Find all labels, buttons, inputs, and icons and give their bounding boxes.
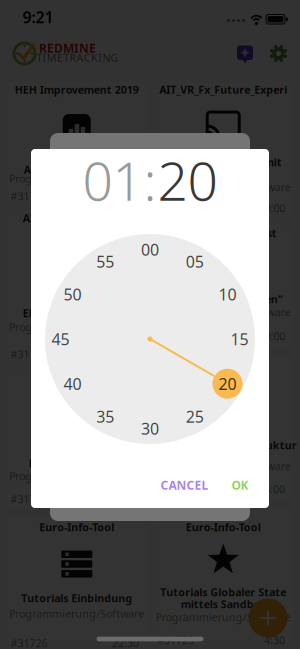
staticText: Programmierung/Software: [156, 610, 291, 624]
staticText: 20: [157, 145, 217, 215]
staticText: 25: [186, 406, 204, 427]
staticText: 40: [63, 373, 81, 394]
staticText: 4:30: [264, 633, 285, 647]
staticText: AIT_Workshops 2019: [23, 211, 131, 225]
button[interactable]: Add time entry: [248, 598, 287, 637]
staticText: 9:21: [22, 6, 53, 28]
button[interactable]: HEH Improvement 2019: [7, 82, 146, 204]
staticText: 00: [141, 239, 159, 260]
staticText: 10: [218, 284, 236, 305]
button[interactable]: Premium: [236, 44, 254, 64]
staticText: 30: [141, 418, 159, 439]
button[interactable]: Euro-Info-Tool: [7, 370, 146, 508]
staticText: 35: [96, 406, 114, 427]
staticText: OK: [231, 477, 248, 493]
staticText: AIT_VR_Fx_Future_Experi: [159, 82, 287, 97]
staticText: #31726: [10, 636, 47, 649]
staticText: Programmierung/Software: [156, 180, 291, 194]
staticText: 10:00: [258, 329, 285, 343]
staticText: Euro-Info-Tool: [39, 520, 114, 534]
staticText: HEH Improvement 2019: [15, 82, 139, 97]
staticText: #31720: [10, 347, 47, 361]
staticText: TIMETRACKING: [36, 50, 119, 65]
staticText: 45: [51, 328, 69, 350]
staticText: Euro-Info-Tool: [186, 357, 261, 371]
staticText: Entwicklung Basis: [29, 456, 125, 470]
staticText: #31718: [10, 189, 47, 203]
button[interactable]: Euro-Info-Tool: [7, 516, 146, 645]
staticText: #31722: [10, 492, 47, 506]
staticText: 4:00: [117, 189, 138, 203]
staticText: 15: [230, 328, 248, 350]
staticText: #31721: [157, 329, 194, 343]
staticText: REDMINE: [39, 40, 96, 56]
staticText: 6:00: [264, 482, 285, 496]
staticText: 50: [63, 284, 81, 305]
button[interactable]: OK: [225, 473, 255, 497]
button[interactable]: AIT_Workshops 2019: [7, 210, 146, 362]
staticText: CANCEL: [160, 477, 208, 493]
staticText: Tutorials Einbindung: [21, 591, 132, 605]
button[interactable]: AIT_GS_Data_Analyst: [153, 225, 293, 348]
staticText: AIT_GS_Data_Analyst: [170, 226, 277, 240]
staticText: #31725: [157, 633, 194, 647]
staticText: 22:30: [112, 636, 139, 649]
staticText: 20: [218, 373, 236, 394]
staticText: Euro-Info-Tool: [39, 371, 114, 385]
button[interactable]: Settings: [269, 44, 287, 62]
staticText: Tutorial „Druckdaten“: [164, 292, 283, 306]
staticText: Tutorials Globaler State: [160, 585, 286, 599]
staticText: Programmierung/Software: [9, 469, 144, 483]
staticText: Tutorials Arbeiten mit: [165, 155, 282, 169]
staticText: 10:00: [258, 201, 285, 215]
staticText: Programmierung/Software: [9, 171, 144, 186]
staticText: Einbindung Systeme: [23, 306, 131, 320]
staticText: Programmierung/Software: [9, 606, 144, 621]
staticText: Programmierung/Software: [156, 305, 291, 319]
staticText: Programmierung/Software: [156, 459, 291, 473]
staticText: :: [143, 145, 156, 215]
staticText: 01: [82, 145, 142, 215]
staticText: Entwicklung und: [31, 293, 122, 308]
button[interactable]: Euro-Info-Tool: [153, 356, 293, 500]
staticText: 55: [96, 251, 114, 272]
staticText: mittels Sandbox: [181, 597, 266, 611]
staticText: 05: [186, 251, 204, 272]
staticText: #31723: [157, 482, 194, 496]
staticText: Aufbau neuer Infrastruktur: [150, 438, 297, 452]
button[interactable]: CANCEL: [156, 473, 212, 497]
staticText: Euro-Info-Tool: [186, 520, 261, 534]
button[interactable]: Euro-Info-Tool: [153, 508, 293, 645]
button[interactable]: AIT_VR_Fx_Future_Experi: [153, 82, 293, 217]
staticText: Accessibility Checks: [24, 162, 130, 177]
staticText: Programmierung/Software: [9, 320, 144, 334]
